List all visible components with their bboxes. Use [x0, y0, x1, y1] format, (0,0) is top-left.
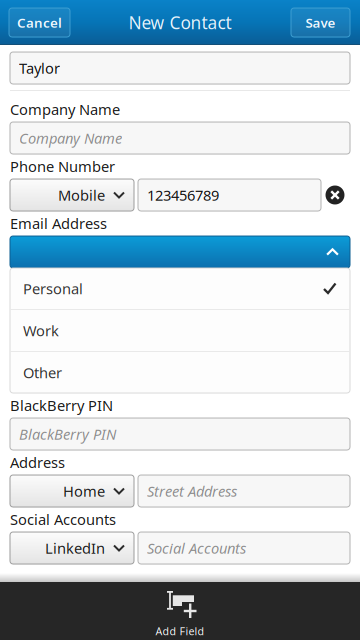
button[interactable]: Mobile	[10, 179, 134, 211]
staticText: BlackBerry PIN	[19, 424, 116, 444]
staticText: Email Address	[10, 213, 107, 233]
staticText: Social Accounts	[147, 538, 246, 558]
staticText: LinkedIn	[45, 538, 105, 558]
staticText: Taylor	[19, 58, 60, 78]
staticText: Add Field	[155, 624, 204, 638]
staticText: Phone Number	[10, 156, 115, 176]
button[interactable]	[10, 236, 350, 268]
button[interactable]: Home	[10, 475, 134, 507]
staticText: Cancel	[17, 14, 62, 31]
staticText: Street Address	[147, 481, 237, 501]
staticText: BlackBerry PIN	[10, 395, 113, 415]
staticText: Company Name	[19, 128, 122, 148]
staticText: Social Accounts	[10, 509, 116, 529]
staticText: Company Name	[10, 99, 120, 119]
staticText: Other	[23, 363, 62, 382]
staticText: New Contact	[128, 11, 231, 34]
button[interactable]: Other	[10, 352, 350, 393]
button[interactable]: Add Field	[0, 582, 360, 640]
staticText: 123456789	[147, 185, 219, 205]
staticText: Personal	[23, 279, 83, 298]
staticText: Home	[63, 481, 105, 501]
button[interactable]: Work	[10, 310, 350, 351]
button[interactable]: Personal	[10, 268, 350, 309]
staticText: Address	[10, 452, 65, 472]
button[interactable]: Clear phone number	[325, 179, 345, 211]
staticText: Save	[305, 14, 335, 31]
staticText: Work	[23, 321, 59, 340]
button[interactable]: Save	[291, 8, 350, 37]
staticText: Mobile	[58, 185, 105, 205]
button[interactable]: LinkedIn	[10, 532, 134, 564]
button[interactable]: Cancel	[9, 8, 70, 37]
